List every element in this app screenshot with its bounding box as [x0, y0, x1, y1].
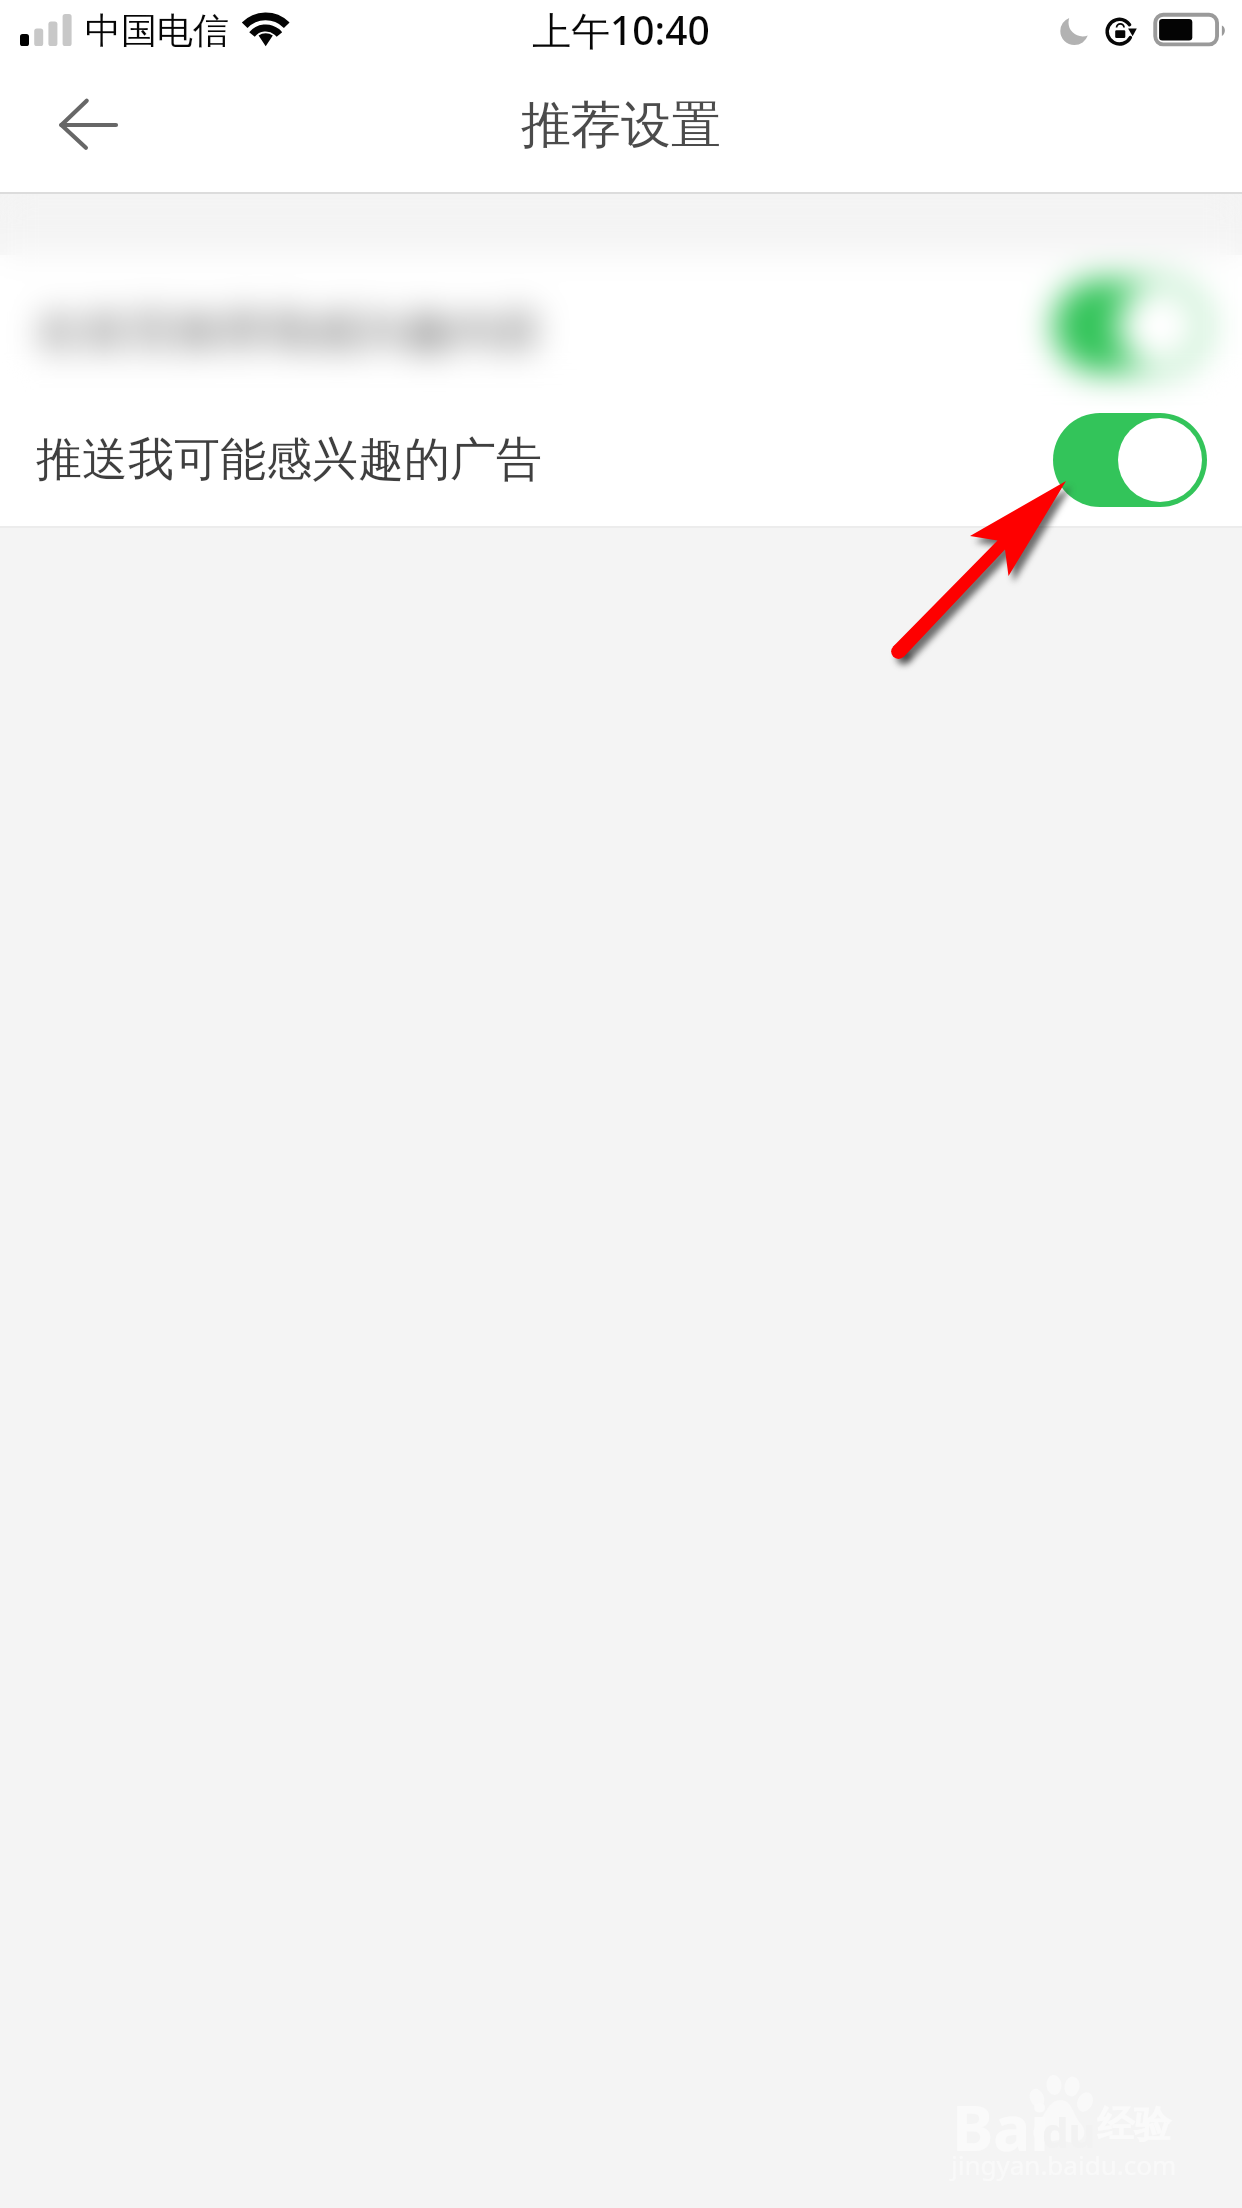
button[interactable]: Toggle personalised ads: [1053, 413, 1207, 507]
staticText: 推荐设置: [521, 94, 721, 157]
staticText: 上午10:40: [532, 3, 710, 56]
button[interactable]: Back: [31, 67, 147, 183]
staticText: 中国电信: [85, 8, 229, 53]
staticText: 在首页推荐我感兴趣内容: [36, 303, 542, 361]
button[interactable]: Recommend content I may like: [0, 255, 1242, 390]
staticText: 推送我可能感兴趣的广告: [36, 431, 542, 489]
button[interactable]: 推送我可能感兴趣的广告: [0, 380, 1242, 526]
